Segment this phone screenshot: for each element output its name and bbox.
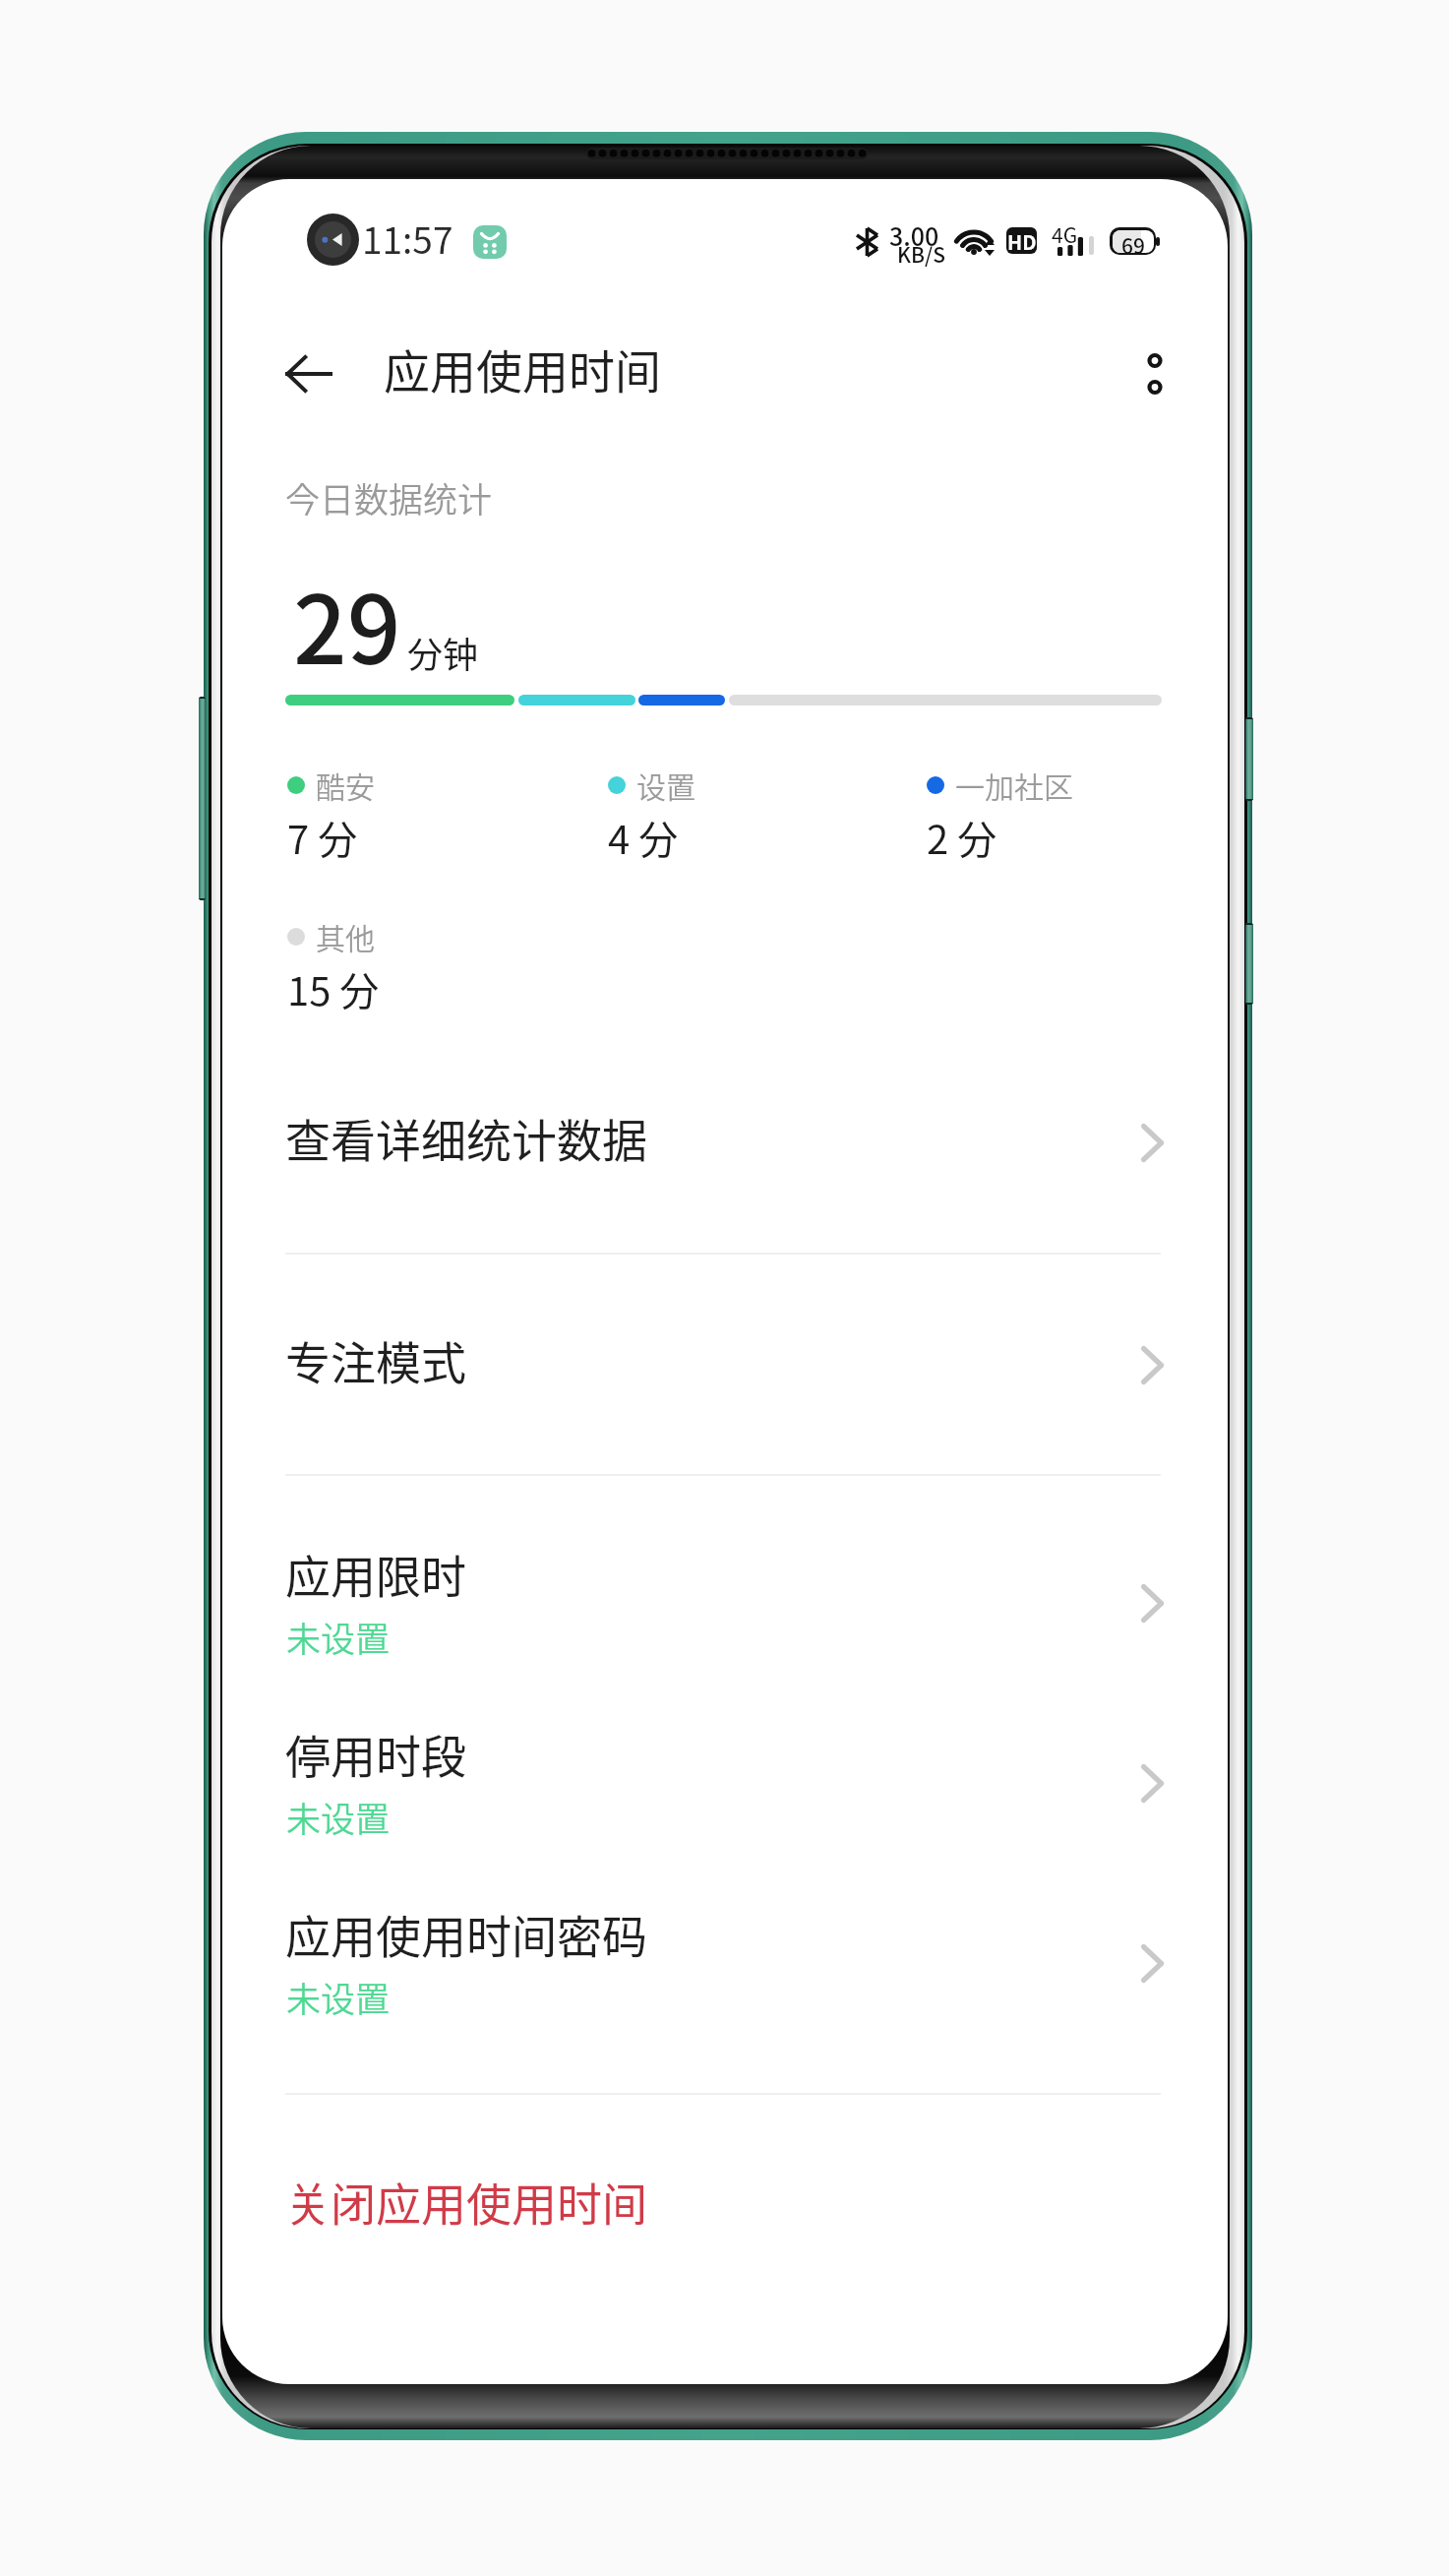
staticText: 停用时段 xyxy=(285,1721,466,1787)
staticText: 15 分 xyxy=(287,960,380,1017)
staticText: HD xyxy=(1007,227,1037,254)
staticText: 关闭应用使用时间 xyxy=(285,2169,647,2235)
staticText: 29 xyxy=(293,555,401,692)
staticText: 未设置 xyxy=(286,1792,391,1842)
staticText: 设置 xyxy=(636,764,695,806)
staticText: 一加社区 xyxy=(955,764,1073,806)
button[interactable]: 关闭应用使用时间 xyxy=(222,2132,1228,2278)
staticText: 2 分 xyxy=(927,809,997,866)
staticText: 查看详细统计数据 xyxy=(285,1105,647,1171)
button[interactable]: Back xyxy=(239,309,377,439)
staticText: 应用使用时间 xyxy=(384,335,661,401)
staticText: KB/S xyxy=(897,239,945,269)
button[interactable]: More options xyxy=(1090,308,1219,439)
staticText: 7 分 xyxy=(287,809,358,866)
staticText: 69 xyxy=(1121,230,1145,253)
staticText: 3.00 xyxy=(889,217,939,253)
button[interactable]: 查看详细统计数据 xyxy=(222,1034,1228,1253)
staticText: 其他 xyxy=(316,915,375,957)
staticText: 4 分 xyxy=(608,809,679,866)
staticText: 应用限时 xyxy=(285,1541,466,1607)
button[interactable]: 专注模式 xyxy=(222,1257,1228,1474)
staticText: 酷安 xyxy=(316,764,375,806)
button[interactable]: 停用时段 xyxy=(222,1678,1228,1858)
staticText: 11:57 xyxy=(362,212,453,265)
staticText: 未设置 xyxy=(286,1972,391,2022)
staticText: 专注模式 xyxy=(285,1327,466,1393)
staticText: 今日数据统计 xyxy=(285,472,493,522)
staticText: 4G xyxy=(1052,219,1078,249)
button[interactable]: 应用限时 xyxy=(222,1498,1228,1678)
button[interactable]: 应用使用时间密码 xyxy=(222,1858,1228,2038)
staticText: 应用使用时间密码 xyxy=(285,1901,647,1967)
staticText: 分钟 xyxy=(407,627,479,678)
staticText: 未设置 xyxy=(286,1612,391,1662)
